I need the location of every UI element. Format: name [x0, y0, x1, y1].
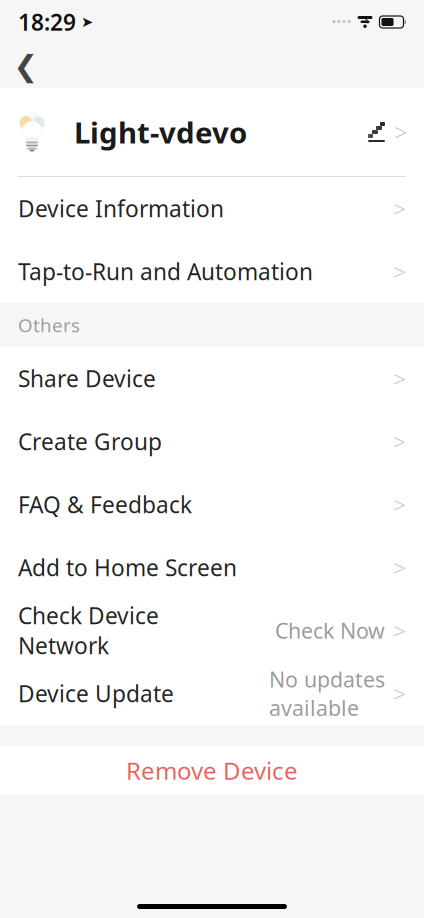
staticText: Light-vdevo — [74, 112, 247, 151]
button[interactable]: Back — [4, 44, 48, 88]
staticText: > — [393, 193, 406, 223]
staticText: Add to Home Screen — [18, 552, 237, 582]
staticText: Create Group — [18, 426, 162, 456]
staticText: > — [393, 489, 406, 519]
staticText: > — [394, 116, 408, 148]
staticText: Remove Device — [126, 755, 298, 786]
staticText: 18:29 — [18, 7, 76, 37]
button[interactable]: Light-vdevo — [0, 88, 424, 176]
staticText: Device Information — [18, 193, 224, 223]
staticText: No updates available — [269, 665, 385, 722]
staticText: ➤ — [81, 14, 93, 30]
button[interactable]: Create Group — [0, 410, 424, 473]
staticText: Device Update — [18, 678, 174, 708]
button[interactable]: Check Device Network — [0, 599, 424, 662]
staticText: Tap-to-Run and Automation — [18, 256, 313, 286]
button[interactable]: Add to Home Screen — [0, 536, 424, 599]
button[interactable]: Remove Device — [0, 746, 424, 795]
button[interactable]: Device Information — [0, 177, 424, 240]
staticText: > — [393, 256, 406, 286]
staticText: Check Device Network — [18, 600, 159, 661]
button[interactable]: Device Update — [0, 662, 424, 725]
staticText: > — [393, 363, 406, 393]
staticText: > — [393, 552, 406, 582]
staticText: ❮ — [13, 49, 38, 83]
staticText: Others — [18, 313, 80, 337]
staticText: > — [393, 615, 406, 645]
staticText: Share Device — [18, 363, 156, 393]
staticText: FAQ & Feedback — [18, 489, 192, 519]
button[interactable]: Share Device — [0, 347, 424, 410]
staticText: ◝ — [361, 12, 368, 32]
staticText: > — [393, 678, 406, 708]
button[interactable]: Tap-to-Run and Automation — [0, 240, 424, 303]
button[interactable]: FAQ & Feedback — [0, 473, 424, 536]
staticText: > — [393, 426, 406, 456]
staticText: Check Now — [275, 616, 385, 645]
